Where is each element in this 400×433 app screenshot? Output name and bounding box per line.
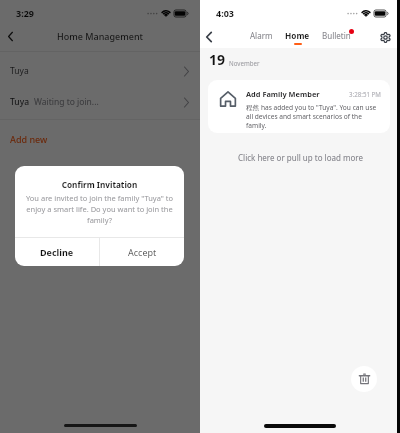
- button[interactable]: Back: [2, 28, 18, 44]
- staticText: Tuya: [10, 96, 30, 108]
- button[interactable]: Click here or pull up to load more: [200, 152, 400, 163]
- button[interactable]: Decline: [15, 238, 99, 266]
- staticText: 4:03: [216, 7, 234, 19]
- staticText: 19: [209, 50, 226, 69]
- button[interactable]: Home: [283, 30, 312, 45]
- staticText: 程然 has added you to "Tuya". You can use …: [246, 103, 381, 130]
- button[interactable]: Settings: [378, 30, 392, 44]
- staticText: Add new: [10, 133, 48, 145]
- staticText: 3:29: [16, 7, 34, 19]
- staticText: Decline: [40, 246, 74, 258]
- staticText: Click here or pull up to load more: [238, 152, 363, 163]
- staticText: November: [229, 59, 260, 67]
- staticText: Bulletin: [322, 30, 351, 41]
- button[interactable]: Accept: [100, 238, 184, 266]
- button[interactable]: Add new: [0, 130, 200, 148]
- staticText: Waiting to join...: [34, 96, 99, 108]
- button[interactable]: Tuya: [0, 59, 200, 83]
- staticText: Home Management: [57, 30, 143, 42]
- button[interactable]: Add Family Member: [208, 80, 390, 133]
- staticText: Tuya: [10, 65, 29, 77]
- staticText: Add Family Member: [246, 89, 320, 99]
- staticText: Confirm Invitation: [15, 179, 184, 190]
- button[interactable]: Tuya: [0, 90, 200, 114]
- staticText: You are invited to join the family "Tuya…: [22, 193, 177, 225]
- staticText: Accept: [128, 246, 157, 258]
- staticText: Home: [285, 30, 310, 41]
- button[interactable]: Alarm: [248, 30, 275, 45]
- button[interactable]: Delete: [351, 366, 377, 392]
- button[interactable]: Back: [201, 29, 217, 45]
- staticText: Alarm: [250, 30, 273, 41]
- button[interactable]: Bulletin: [320, 30, 353, 45]
- staticText: 3:28:51 PM: [349, 90, 381, 98]
